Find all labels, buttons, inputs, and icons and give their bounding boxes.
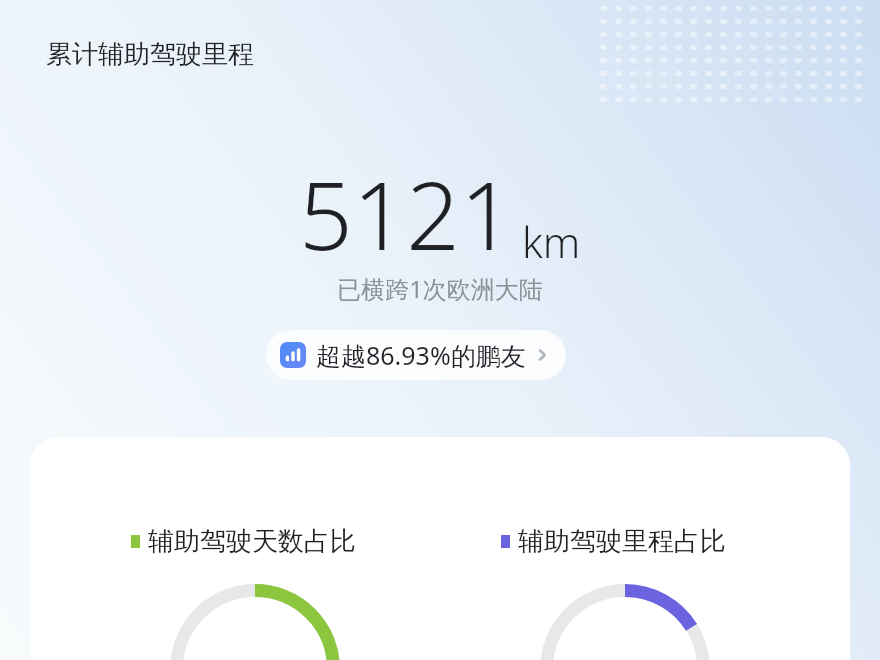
button[interactable]: 超越86.93%的鹏友 [266,330,566,380]
staticText: km [522,213,581,270]
staticText: 辅助驾驶里程占比 [518,525,726,558]
staticText: 累计辅助驾驶里程 [46,38,254,71]
staticText: 已横跨1次欧洲大陆 [0,272,880,305]
staticText: 5121 [299,150,514,278]
staticText: 辅助驾驶天数占比 [148,525,356,558]
staticText: 超越86.93%的鹏友 [316,338,526,372]
button[interactable]: 辅助驾驶天数占比 [30,437,850,660]
